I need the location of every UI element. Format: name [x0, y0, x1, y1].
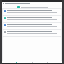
- button[interactable]: [3, 23, 61, 29]
- button[interactable]: Accent chip: [2, 5, 62, 8]
- button[interactable]: [3, 16, 61, 22]
- button[interactable]: [3, 30, 61, 36]
- other: Accent chip: [17, 6, 20, 8]
- button[interactable]: [3, 9, 61, 15]
- button[interactable]: Top app bar: [2, 2, 62, 5]
